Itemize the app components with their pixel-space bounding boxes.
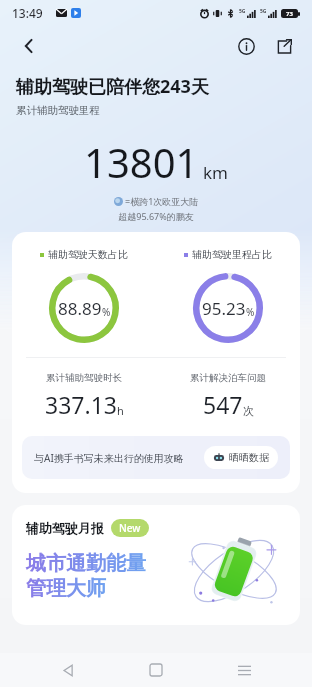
button[interactable]: 晒晒数据 bbox=[204, 446, 278, 469]
staticText: 547 bbox=[203, 389, 243, 420]
staticText: 5G bbox=[260, 8, 267, 15]
staticText: 晒晒数据 bbox=[229, 451, 269, 464]
staticText: 辅助驾驶天数占比 bbox=[48, 248, 128, 261]
staticText: 13:49 bbox=[12, 5, 43, 21]
staticText: 5G bbox=[239, 8, 246, 15]
staticText: 与AI携手书写未来出行的使用攻略 bbox=[34, 451, 196, 465]
staticText: New bbox=[119, 521, 141, 535]
staticText: 管理大师 bbox=[26, 576, 106, 601]
staticText: 辅助驾驶已陪伴您243天 bbox=[16, 74, 209, 99]
staticText: 337.13 bbox=[45, 389, 117, 420]
staticText: 超越95.67%的鹏友 bbox=[16, 210, 296, 222]
staticText: 辅助驾驶里程占比 bbox=[192, 248, 272, 261]
staticText: 95.23 bbox=[202, 297, 246, 320]
staticText: 累计辅助驾驶里程 bbox=[16, 104, 100, 117]
button[interactable]: 与AI携手书写未来出行的使用攻略 bbox=[22, 436, 290, 479]
staticText: h bbox=[117, 403, 124, 418]
button[interactable]: Recents bbox=[224, 653, 264, 687]
button[interactable]: 辅助驾驶月报 bbox=[12, 505, 300, 625]
button[interactable]: Share bbox=[268, 30, 300, 62]
staticText: 13801 bbox=[84, 135, 199, 189]
staticText: % bbox=[102, 305, 111, 319]
button[interactable]: Back bbox=[12, 29, 46, 63]
staticText: 累计解决泊车问题 bbox=[190, 372, 266, 384]
button[interactable]: Home bbox=[136, 653, 176, 687]
staticText: 城市通勤能量 bbox=[26, 551, 146, 576]
button[interactable]: Back bbox=[48, 653, 88, 687]
staticText: 73 bbox=[286, 10, 293, 18]
staticText: 辅助驾驶月报 bbox=[26, 520, 104, 536]
staticText: 88.89 bbox=[58, 297, 102, 320]
button[interactable]: Info bbox=[230, 30, 262, 62]
staticText: km bbox=[203, 161, 228, 184]
staticText: % bbox=[246, 305, 255, 319]
staticText: 累计辅助驾驶时长 bbox=[46, 372, 122, 384]
staticText: =横跨1次欧亚大陆 bbox=[125, 195, 199, 207]
staticText: 次 bbox=[243, 404, 254, 418]
